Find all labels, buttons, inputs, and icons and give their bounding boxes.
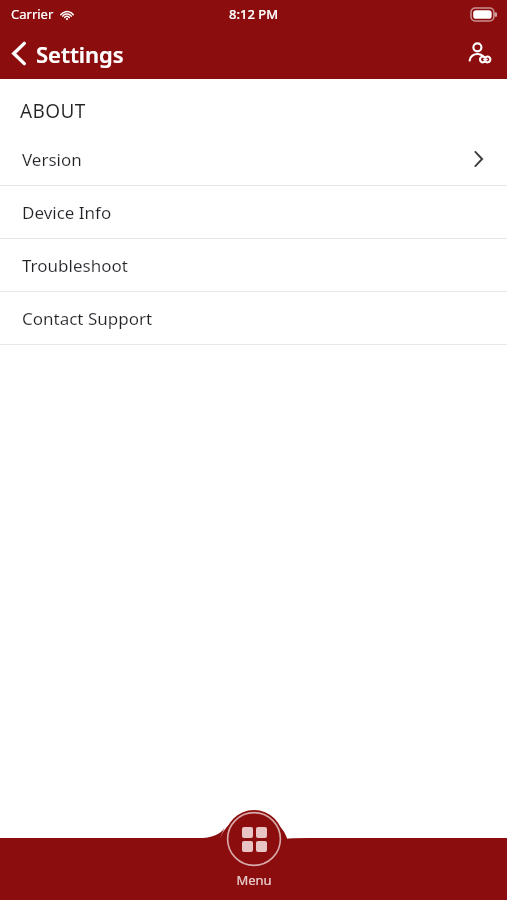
button[interactable]: Version [0,133,507,185]
button[interactable]: Menu [225,810,283,889]
staticText: Troubleshoot [22,254,128,277]
button[interactable]: Share contact [453,28,507,79]
staticText: Carrier [11,5,54,23]
button[interactable]: Back [0,28,136,79]
button[interactable]: Contact Support [0,292,507,344]
button[interactable]: Troubleshoot [0,239,507,291]
staticText: 8:12 PM [229,5,279,23]
staticText: Contact Support [22,307,153,330]
staticText: Device Info [22,201,112,224]
other: Back [12,42,27,65]
staticText: Menu [236,871,272,889]
staticText: Settings [36,39,124,69]
staticText: Version [22,148,82,171]
staticText: ABOUT [20,98,86,124]
button[interactable]: Device Info [0,186,507,238]
